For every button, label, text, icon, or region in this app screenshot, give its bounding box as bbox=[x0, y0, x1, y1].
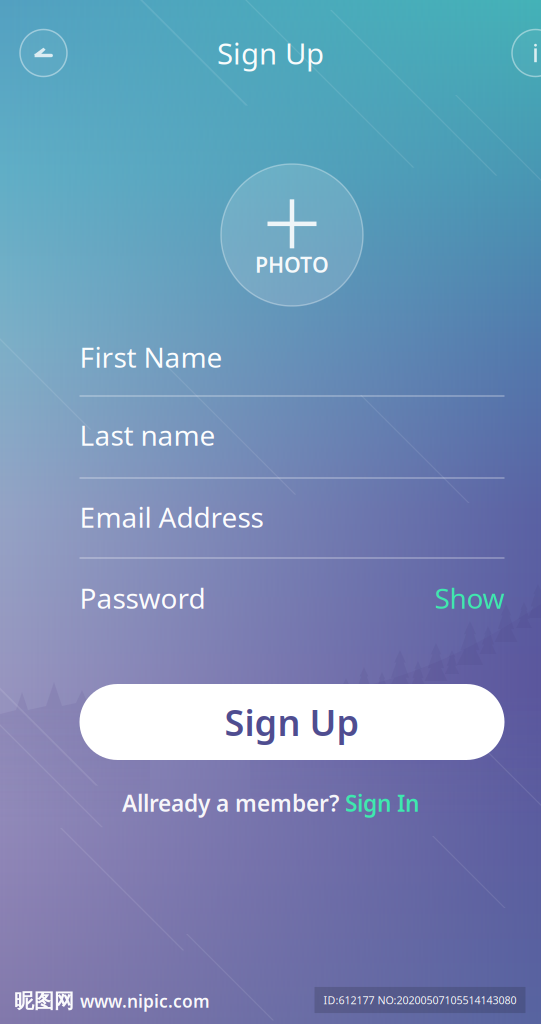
staticText: ID:612177 NO:20200507105514143080 bbox=[323, 993, 516, 1007]
staticText: Sign In bbox=[345, 788, 419, 818]
staticText: Email Address bbox=[79, 498, 263, 536]
staticText: First Name bbox=[79, 338, 222, 376]
staticText: Show bbox=[434, 579, 504, 617]
button[interactable]: Sign In bbox=[345, 788, 419, 818]
staticText: Last name bbox=[79, 416, 215, 454]
staticText: Password bbox=[79, 579, 205, 617]
button[interactable]: Information bbox=[512, 29, 541, 76]
staticText: www.nipic.com bbox=[80, 989, 210, 1012]
button[interactable]: Sign Up bbox=[79, 684, 504, 760]
staticText: PHOTO bbox=[255, 250, 329, 279]
staticText: 昵图网 bbox=[14, 989, 74, 1013]
button[interactable]: Back bbox=[20, 29, 67, 76]
staticText: Sign Up bbox=[224, 698, 359, 746]
staticText: Allready a member? bbox=[122, 788, 345, 818]
button[interactable]: Add photo bbox=[221, 164, 363, 306]
button[interactable]: Show bbox=[434, 579, 504, 617]
staticText: Sign Up bbox=[217, 33, 324, 72]
